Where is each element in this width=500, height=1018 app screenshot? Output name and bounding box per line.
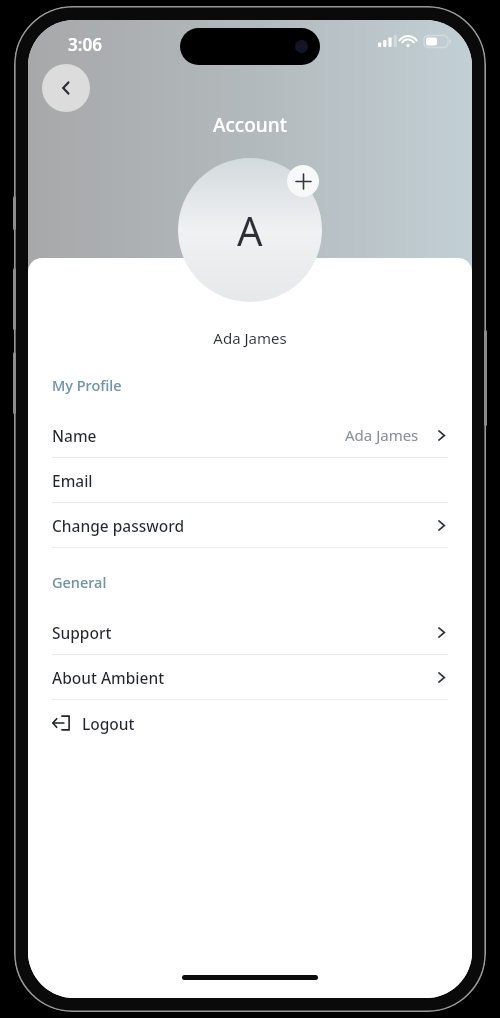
button[interactable]: Email (52, 458, 448, 502)
staticText: Logout (82, 713, 135, 734)
staticText: Support (52, 622, 112, 643)
staticText: 3:06 (68, 33, 102, 56)
button[interactable]: Add photo (287, 165, 319, 197)
button[interactable]: Logout (52, 700, 448, 746)
staticText: A (237, 203, 263, 257)
staticText: General (52, 572, 107, 592)
button[interactable]: Name (52, 413, 448, 457)
staticText: Change password (52, 515, 185, 536)
staticText: Ada James (345, 425, 419, 445)
button[interactable]: Support (52, 610, 448, 654)
staticText: About Ambient (52, 667, 165, 688)
button[interactable]: Profile photo (178, 158, 322, 302)
button[interactable]: Change password (52, 503, 448, 547)
staticText: Ada James (28, 328, 472, 348)
staticText: Account (28, 112, 472, 138)
button[interactable]: Back (42, 64, 90, 112)
staticText: My Profile (52, 375, 122, 395)
staticText: Name (52, 425, 97, 446)
staticText: Email (52, 470, 93, 491)
button[interactable]: About Ambient (52, 655, 448, 699)
